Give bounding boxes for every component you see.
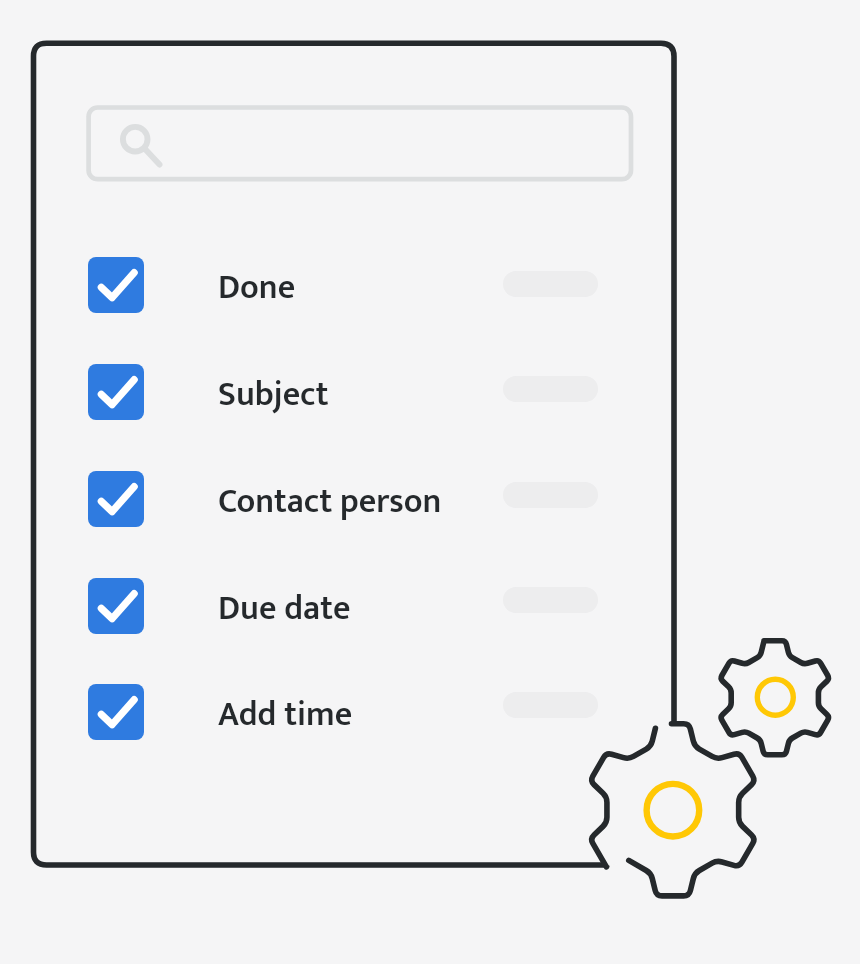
staticText: Done <box>218 260 296 316</box>
button[interactable]: Due date checked <box>88 578 598 634</box>
staticText: Subject <box>218 367 329 423</box>
button[interactable]: Subject checked <box>88 364 598 420</box>
button[interactable]: Add time checked <box>88 684 598 740</box>
staticText: Due date <box>218 581 351 637</box>
other: Settings <box>0 0 860 964</box>
staticText: Contact person <box>218 474 442 530</box>
staticText: Add time <box>218 687 353 743</box>
other: Add time checked <box>88 684 144 740</box>
button[interactable]: Done checked <box>88 257 598 313</box>
other: Done checked <box>88 257 144 313</box>
button[interactable]: Contact person checked <box>88 471 598 527</box>
other: Contact person checked <box>88 471 144 527</box>
other: Subject checked <box>88 364 144 420</box>
other: Due date checked <box>88 578 144 634</box>
